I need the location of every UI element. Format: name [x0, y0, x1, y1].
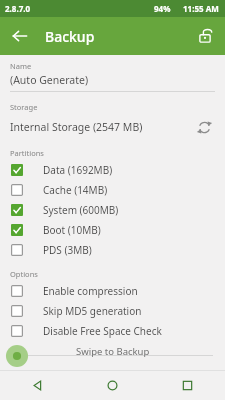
staticText: Swipe to Backup: [76, 345, 150, 358]
button[interactable]: System (600MB): [0, 200, 225, 220]
button[interactable]: Back: [4, 20, 36, 52]
staticText: Storage: [10, 102, 38, 112]
staticText: 11:55 AM: [183, 3, 219, 14]
button[interactable]: Refresh storage: [191, 114, 217, 140]
staticText: System (600MB): [43, 203, 119, 217]
button[interactable]: Back: [0, 370, 75, 400]
button[interactable]: PDS (3MB): [0, 240, 225, 260]
button[interactable]: Swipe to Backup: [4, 343, 30, 369]
staticText: 2.8.7.0: [5, 3, 31, 14]
staticText: Disable Free Space Check: [43, 324, 162, 338]
staticText: 94%: [154, 3, 171, 14]
staticText: PDS (3MB): [43, 243, 92, 257]
button[interactable]: Disable Free Space Check: [0, 321, 225, 341]
button[interactable]: Enable compression: [0, 281, 225, 301]
staticText: Internal Storage (2547 MB): [10, 120, 191, 134]
staticText: Options: [10, 269, 38, 279]
staticText: Partitions: [10, 148, 44, 158]
staticText: (Auto Generate): [10, 73, 89, 87]
staticText: Backup: [45, 27, 95, 46]
staticText: Enable compression: [43, 284, 138, 298]
staticText: Cache (14MB): [43, 183, 108, 197]
staticText: Skip MD5 generation: [43, 304, 142, 318]
button[interactable]: Recents: [150, 370, 225, 400]
button[interactable]: Unlock: [190, 21, 220, 51]
button[interactable]: Boot (10MB): [0, 220, 225, 240]
button[interactable]: Skip MD5 generation: [0, 301, 225, 321]
button[interactable]: Home: [75, 370, 150, 400]
button[interactable]: Cache (14MB): [0, 180, 225, 200]
staticText: Name: [10, 61, 32, 71]
button[interactable]: Data (1692MB): [0, 160, 225, 180]
staticText: Data (1692MB): [43, 163, 113, 177]
staticText: Boot (10MB): [43, 223, 101, 237]
